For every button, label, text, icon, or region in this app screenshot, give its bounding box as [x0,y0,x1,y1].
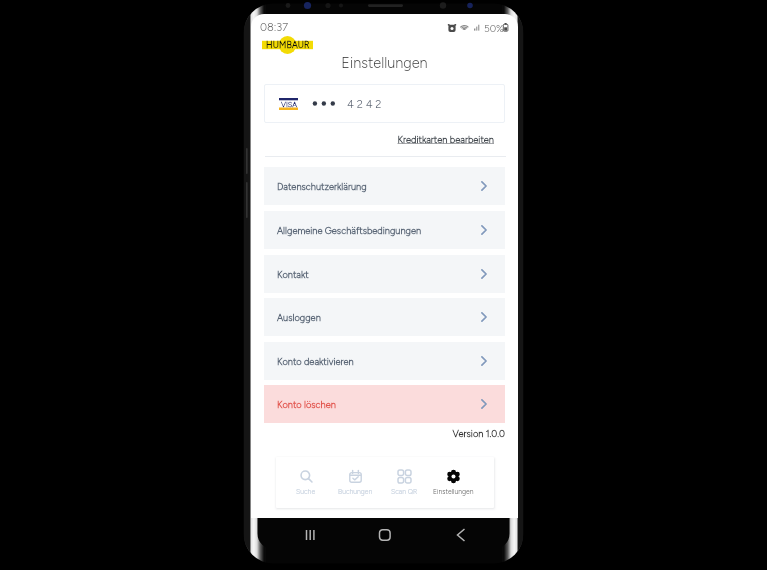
button[interactable]: Konto löschen [264,385,505,423]
staticText: 4 2 4 2 [347,97,382,110]
staticText: Konto deaktivieren [277,356,354,367]
staticText: Scan QR [391,488,418,496]
staticText: Ausloggen [277,312,321,323]
staticText: Datenschutzerklärung [277,181,367,192]
staticText: Buchungen [338,488,373,496]
staticText: HUMBAUR [266,40,310,50]
staticText: 08:37 [260,21,289,34]
button[interactable]: Suche [282,457,330,508]
button[interactable]: Einstellungen [429,457,477,508]
button[interactable]: Kontakt [264,255,505,293]
button[interactable]: Kreditkarten bearbeiten [251,134,494,145]
staticText: Konto löschen [277,399,336,410]
button[interactable]: Allgemeine Geschäftsbedingungen [264,211,505,249]
button[interactable]: Konto deaktivieren [264,342,505,380]
staticText: Allgemeine Geschäftsbedingungen [277,225,422,236]
staticText: Einstellungen [251,54,518,71]
button[interactable]: Scan QR [380,457,428,508]
staticText: Kontakt [277,269,309,280]
button[interactable]: Buchungen [331,457,379,508]
staticText: VISA [281,100,297,109]
button[interactable]: VISA [264,84,505,123]
button[interactable]: Datenschutzerklärung [264,167,505,205]
staticText: Version 1.0.0 [251,428,505,439]
staticText: 50% [484,22,504,34]
staticText: Einstellungen [433,488,474,496]
staticText: Suche [296,488,316,496]
button[interactable]: Ausloggen [264,298,505,336]
